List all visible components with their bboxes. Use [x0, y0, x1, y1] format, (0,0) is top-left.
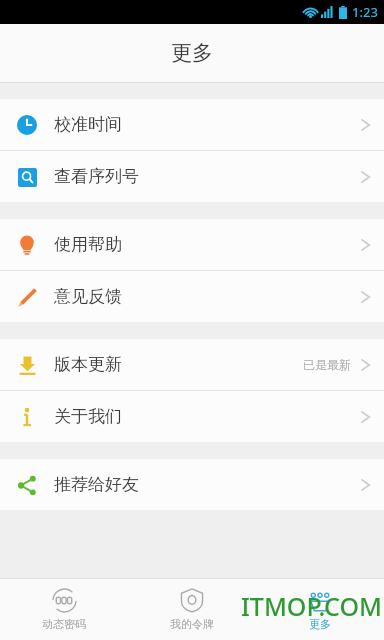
button[interactable]: 意见反馈	[0, 271, 384, 322]
button[interactable]: 动态密码	[0, 578, 128, 640]
staticText: 版本更新	[54, 354, 122, 375]
staticText: 校准时间	[54, 114, 122, 135]
staticText: 推荐给好友	[54, 474, 139, 495]
staticText: 已是最新	[303, 357, 351, 372]
staticText: 查看序列号	[54, 166, 139, 187]
staticText: 动态密码	[42, 617, 86, 631]
button[interactable]: 使用帮助	[0, 219, 384, 270]
staticText: 我的令牌	[170, 617, 214, 631]
button[interactable]: 查看序列号	[0, 151, 384, 202]
staticText: 1:23	[352, 3, 378, 21]
button[interactable]: 推荐给好友	[0, 459, 384, 510]
staticText: 更多	[171, 40, 213, 66]
button[interactable]: 校准时间	[0, 99, 384, 150]
staticText: ITMOP.COM	[241, 589, 382, 623]
button[interactable]: 我的令牌	[128, 578, 256, 640]
staticText: 意见反馈	[54, 286, 122, 307]
button[interactable]: 版本更新	[0, 339, 384, 390]
staticText: 更多	[309, 617, 331, 631]
staticText: 关于我们	[54, 406, 122, 427]
staticText: 使用帮助	[54, 234, 122, 255]
button[interactable]: 关于我们	[0, 391, 384, 442]
button[interactable]: 更多	[256, 578, 384, 640]
